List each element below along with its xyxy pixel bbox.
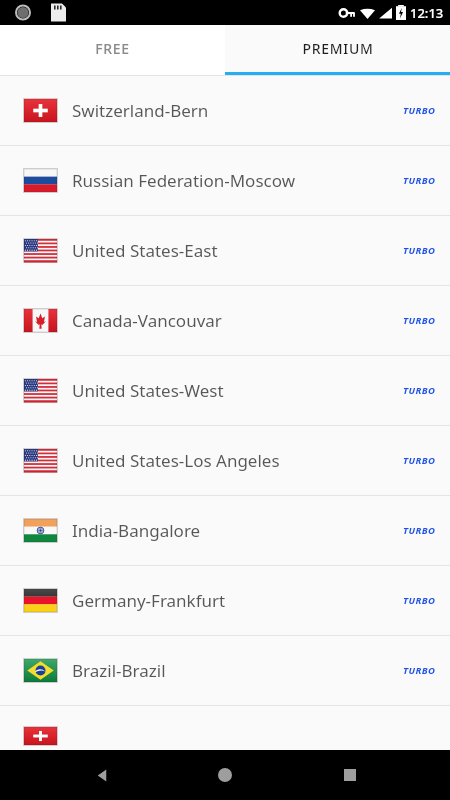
staticText: 12:13 [410, 4, 444, 22]
staticText: United States-West [72, 379, 403, 402]
button[interactable]: United States-West [0, 356, 450, 425]
button[interactable]: Switzerland-Bern [0, 76, 450, 145]
staticText: Switzerland-Bern [72, 99, 403, 122]
button[interactable]: India-Bangalore [0, 496, 450, 565]
button[interactable]: United States-East [0, 216, 450, 285]
staticText: FREE [95, 39, 130, 58]
staticText: TURBO [403, 664, 436, 677]
staticText: TURBO [403, 384, 436, 397]
staticText: TURBO [403, 104, 436, 117]
button[interactable]: Brazil-Brazil [0, 636, 450, 705]
button[interactable]: Home [201, 751, 249, 799]
staticText: Brazil-Brazil [72, 659, 403, 682]
staticText: Russian Federation-Moscow [72, 169, 403, 192]
staticText: TURBO [403, 594, 436, 607]
button[interactable]: Canada-Vancouvar [0, 286, 450, 355]
staticText: TURBO [403, 454, 436, 467]
button[interactable]: FREE [0, 25, 225, 72]
staticText: TURBO [403, 524, 436, 537]
staticText: PREMIUM [302, 39, 374, 58]
staticText: Germany-Frankfurt [72, 589, 403, 612]
button[interactable]: PREMIUM [225, 25, 450, 72]
button[interactable]: Russian Federation-Moscow [0, 146, 450, 215]
button[interactable]: Recent apps [326, 751, 374, 799]
staticText: India-Bangalore [72, 519, 403, 542]
button[interactable]: Back [77, 751, 125, 799]
staticText: TURBO [403, 174, 436, 187]
staticText: TURBO [403, 244, 436, 257]
staticText: United States-East [72, 239, 403, 262]
staticText: TURBO [403, 314, 436, 327]
button[interactable]: United States-Los Angeles [0, 426, 450, 495]
button[interactable]: Germany-Frankfurt [0, 566, 450, 635]
staticText: United States-Los Angeles [72, 449, 403, 472]
button[interactable] [0, 706, 450, 746]
staticText: Canada-Vancouvar [72, 309, 403, 332]
